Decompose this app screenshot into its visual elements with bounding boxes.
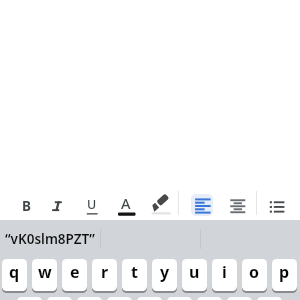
button[interactable]: o [242,259,267,291]
staticText: y [160,261,170,283]
staticText: u [189,261,200,283]
button[interactable]: A [112,192,140,220]
button[interactable] [145,189,174,218]
staticText: p [279,261,290,283]
button[interactable] [43,192,71,220]
button[interactable]: U [78,192,106,220]
button[interactable]: e [62,259,87,291]
button[interactable] [224,192,252,220]
button[interactable]: B [12,192,40,220]
staticText: o [249,261,260,283]
button[interactable]: p [272,259,297,291]
button[interactable] [263,192,291,220]
staticText: q [9,261,20,283]
staticText: e [70,261,80,283]
staticText: r [101,261,109,283]
staticText: t [131,261,138,283]
button[interactable]: y [152,259,177,291]
staticText: A [121,193,131,213]
button[interactable]: “vK0slm8PZT” [0,224,100,254]
button[interactable]: r [92,259,117,291]
button[interactable]: t [122,259,147,291]
button[interactable] [191,194,213,216]
staticText: “vK0slm8PZT” [5,230,95,248]
button[interactable]: i [212,259,237,291]
button[interactable]: u [182,259,207,291]
staticText: B [22,197,31,215]
button[interactable]: w [32,259,57,291]
staticText: w [38,261,52,283]
staticText: U [87,196,97,213]
staticText: i [222,261,227,283]
button[interactable]: q [2,259,27,291]
